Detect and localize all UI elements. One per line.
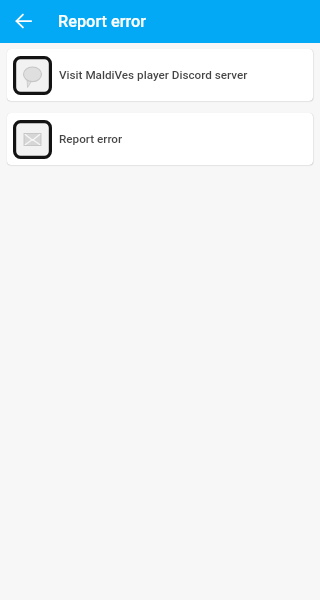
button[interactable]: Report error [7, 113, 313, 165]
staticText: Visit MaldiVes player Discord server [59, 68, 248, 82]
staticText: Report error [59, 132, 123, 146]
button[interactable]: Navigate up [8, 6, 40, 38]
button[interactable]: Visit MaldiVes player Discord server [7, 49, 313, 101]
staticText: Report error [58, 12, 146, 31]
